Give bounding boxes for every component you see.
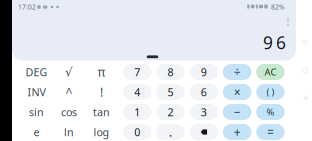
staticText: +	[234, 124, 241, 140]
staticText: log	[93, 125, 109, 139]
staticText: .	[169, 124, 172, 140]
staticText: 6	[201, 85, 207, 99]
button[interactable]: DEG	[21, 64, 51, 80]
button[interactable]: 0	[123, 124, 151, 140]
button[interactable]: ln	[54, 124, 84, 140]
button[interactable]: 5	[156, 84, 185, 100]
button[interactable]: tan	[86, 104, 116, 120]
button[interactable]: 3	[190, 104, 218, 120]
button[interactable]: π	[86, 64, 116, 80]
staticText: DEG	[25, 65, 47, 79]
button[interactable]: ÷	[223, 64, 251, 80]
staticText: 82%	[271, 3, 285, 11]
staticText: 8	[168, 65, 174, 79]
staticText: 3	[201, 105, 207, 119]
staticText: −	[234, 104, 241, 120]
button[interactable]: More options	[281, 15, 295, 29]
staticText: 1	[134, 105, 140, 119]
staticText: sin	[29, 105, 44, 119]
staticText: π	[97, 64, 105, 80]
button[interactable]: Backspace	[190, 124, 218, 140]
staticText: tan	[93, 105, 110, 119]
button[interactable]: Back	[298, 91, 312, 105]
button[interactable]: 6	[190, 84, 218, 100]
staticText: 2	[168, 105, 174, 119]
button[interactable]: AC	[256, 64, 285, 80]
button[interactable]: cos	[54, 104, 84, 120]
staticText: AC	[264, 66, 276, 78]
button[interactable]: log	[86, 124, 116, 140]
staticText: √	[65, 65, 73, 79]
staticText: ÷	[234, 64, 241, 80]
staticText: 9	[201, 65, 207, 79]
staticText: ^	[65, 84, 72, 100]
button[interactable]: Home	[298, 63, 312, 77]
button[interactable]: ^	[54, 84, 84, 100]
staticText: 5	[168, 85, 174, 99]
button[interactable]: √	[54, 64, 84, 80]
button[interactable]: 8	[156, 64, 185, 80]
button[interactable]: −	[223, 104, 251, 120]
button[interactable]: Recents	[298, 35, 312, 49]
button[interactable]: e	[21, 124, 51, 140]
staticText: 0	[134, 125, 140, 139]
staticText: ( )	[266, 86, 274, 98]
staticText: ln	[64, 125, 74, 139]
staticText: INV	[27, 85, 45, 99]
staticText: 4	[134, 85, 140, 99]
button[interactable]: 2	[156, 104, 185, 120]
button[interactable]: 1	[123, 104, 151, 120]
button[interactable]: sin	[21, 104, 51, 120]
button[interactable]: +	[223, 124, 251, 140]
staticText: %	[266, 106, 274, 118]
staticText: 96	[263, 31, 286, 54]
staticText: 7	[134, 65, 140, 79]
button[interactable]: INV	[21, 84, 51, 100]
button[interactable]: .	[156, 124, 185, 140]
button[interactable]: ×	[223, 84, 251, 100]
staticText: e	[33, 125, 39, 139]
staticText: 17:02	[18, 3, 36, 11]
button[interactable]: %	[256, 104, 285, 120]
staticText: =	[267, 124, 274, 140]
button[interactable]: !	[86, 84, 116, 100]
staticText: !	[100, 84, 103, 100]
staticText: ×	[234, 84, 241, 100]
staticText: cos	[61, 105, 77, 119]
button[interactable]: 9	[190, 64, 218, 80]
button[interactable]: 4	[123, 84, 151, 100]
button[interactable]: =	[256, 124, 285, 140]
button[interactable]: ( )	[256, 84, 285, 100]
button[interactable]: 7	[123, 64, 151, 80]
